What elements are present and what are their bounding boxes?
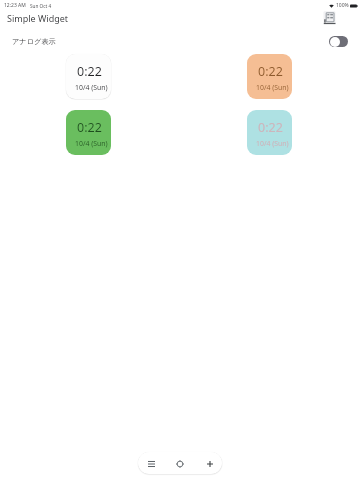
- button[interactable]: 0:22: [247, 110, 292, 155]
- button[interactable]: 0:22: [247, 54, 292, 99]
- staticText: 12:23 AM: [4, 2, 26, 9]
- staticText: Sun Oct 4: [30, 3, 52, 9]
- button[interactable]: Widget preview: [322, 10, 337, 25]
- staticText: 0:22: [258, 119, 283, 136]
- button[interactable]: 0:22: [66, 54, 111, 99]
- button[interactable]: Settings: [169, 453, 191, 474]
- staticText: アナログ表示: [12, 37, 56, 46]
- staticText: Simple Widget: [7, 12, 69, 24]
- button[interactable]: List: [140, 453, 162, 474]
- button[interactable]: 0:22: [66, 110, 111, 155]
- button[interactable]: Add: [199, 453, 221, 474]
- staticText: 10/4 (Sun): [256, 83, 289, 92]
- staticText: 10/4 (Sun): [256, 139, 289, 148]
- staticText: 100%: [336, 2, 349, 9]
- staticText: 10/4 (Sun): [75, 83, 108, 92]
- staticText: 10/4 (Sun): [75, 139, 108, 148]
- staticText: 0:22: [77, 63, 102, 80]
- button[interactable]: アナログ表示: [0, 33, 360, 49]
- staticText: 0:22: [258, 63, 283, 80]
- staticText: 0:22: [77, 119, 102, 136]
